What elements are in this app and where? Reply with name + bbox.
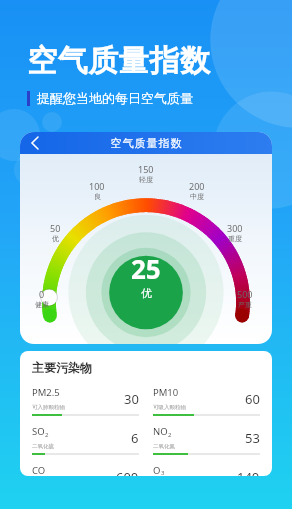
staticText: 健康: [35, 300, 49, 309]
staticText: 600: [116, 468, 139, 476]
staticText: O: [153, 464, 161, 476]
staticText: NO: [153, 425, 168, 438]
button[interactable]: Back: [25, 133, 45, 153]
staticText: PM2.5: [32, 386, 60, 399]
staticText: 25: [131, 251, 161, 286]
staticText: 重度: [228, 234, 242, 243]
staticText: PM10: [153, 386, 179, 399]
staticText: 轻度: [139, 175, 153, 184]
staticText: 可吸入颗粒物: [153, 404, 186, 411]
button[interactable]: O: [153, 464, 260, 476]
staticText: 提醒您当地的每日空气质量: [37, 90, 193, 106]
button[interactable]: CO: [32, 464, 139, 476]
button[interactable]: NO: [153, 425, 260, 455]
staticText: 500: [237, 288, 253, 300]
staticText: 60: [245, 390, 260, 408]
staticText: 空气质量指数: [27, 42, 210, 80]
button[interactable]: Back: [20, 132, 272, 154]
staticText: 良: [94, 192, 101, 201]
staticText: 二氧化氮: [153, 443, 175, 450]
staticText: 140: [237, 468, 260, 476]
staticText: 300: [227, 222, 243, 234]
staticText: 3: [161, 469, 165, 476]
staticText: 50: [50, 222, 61, 234]
staticText: 0: [39, 288, 45, 300]
staticText: 150: [138, 163, 154, 175]
staticText: 严重: [238, 300, 252, 309]
staticText: 空气质量指数: [110, 136, 182, 150]
staticText: 中度: [190, 192, 204, 201]
staticText: 优: [141, 286, 152, 300]
staticText: 30: [124, 390, 139, 408]
staticText: 可入肺颗粒物: [32, 404, 65, 411]
staticText: 200: [189, 180, 205, 192]
staticText: 主要污染物: [32, 360, 92, 375]
button[interactable]: PM2.5: [32, 386, 139, 416]
staticText: SO: [32, 425, 45, 438]
staticText: 优: [52, 234, 59, 243]
staticText: 6: [131, 429, 139, 447]
button[interactable]: SO: [32, 425, 139, 455]
button[interactable]: PM10: [153, 386, 260, 416]
staticText: 2: [45, 431, 49, 439]
staticText: CO: [32, 464, 46, 476]
staticText: 二氧化硫: [32, 443, 54, 450]
staticText: 53: [245, 429, 260, 447]
staticText: 100: [89, 180, 105, 192]
staticText: 2: [168, 431, 172, 439]
